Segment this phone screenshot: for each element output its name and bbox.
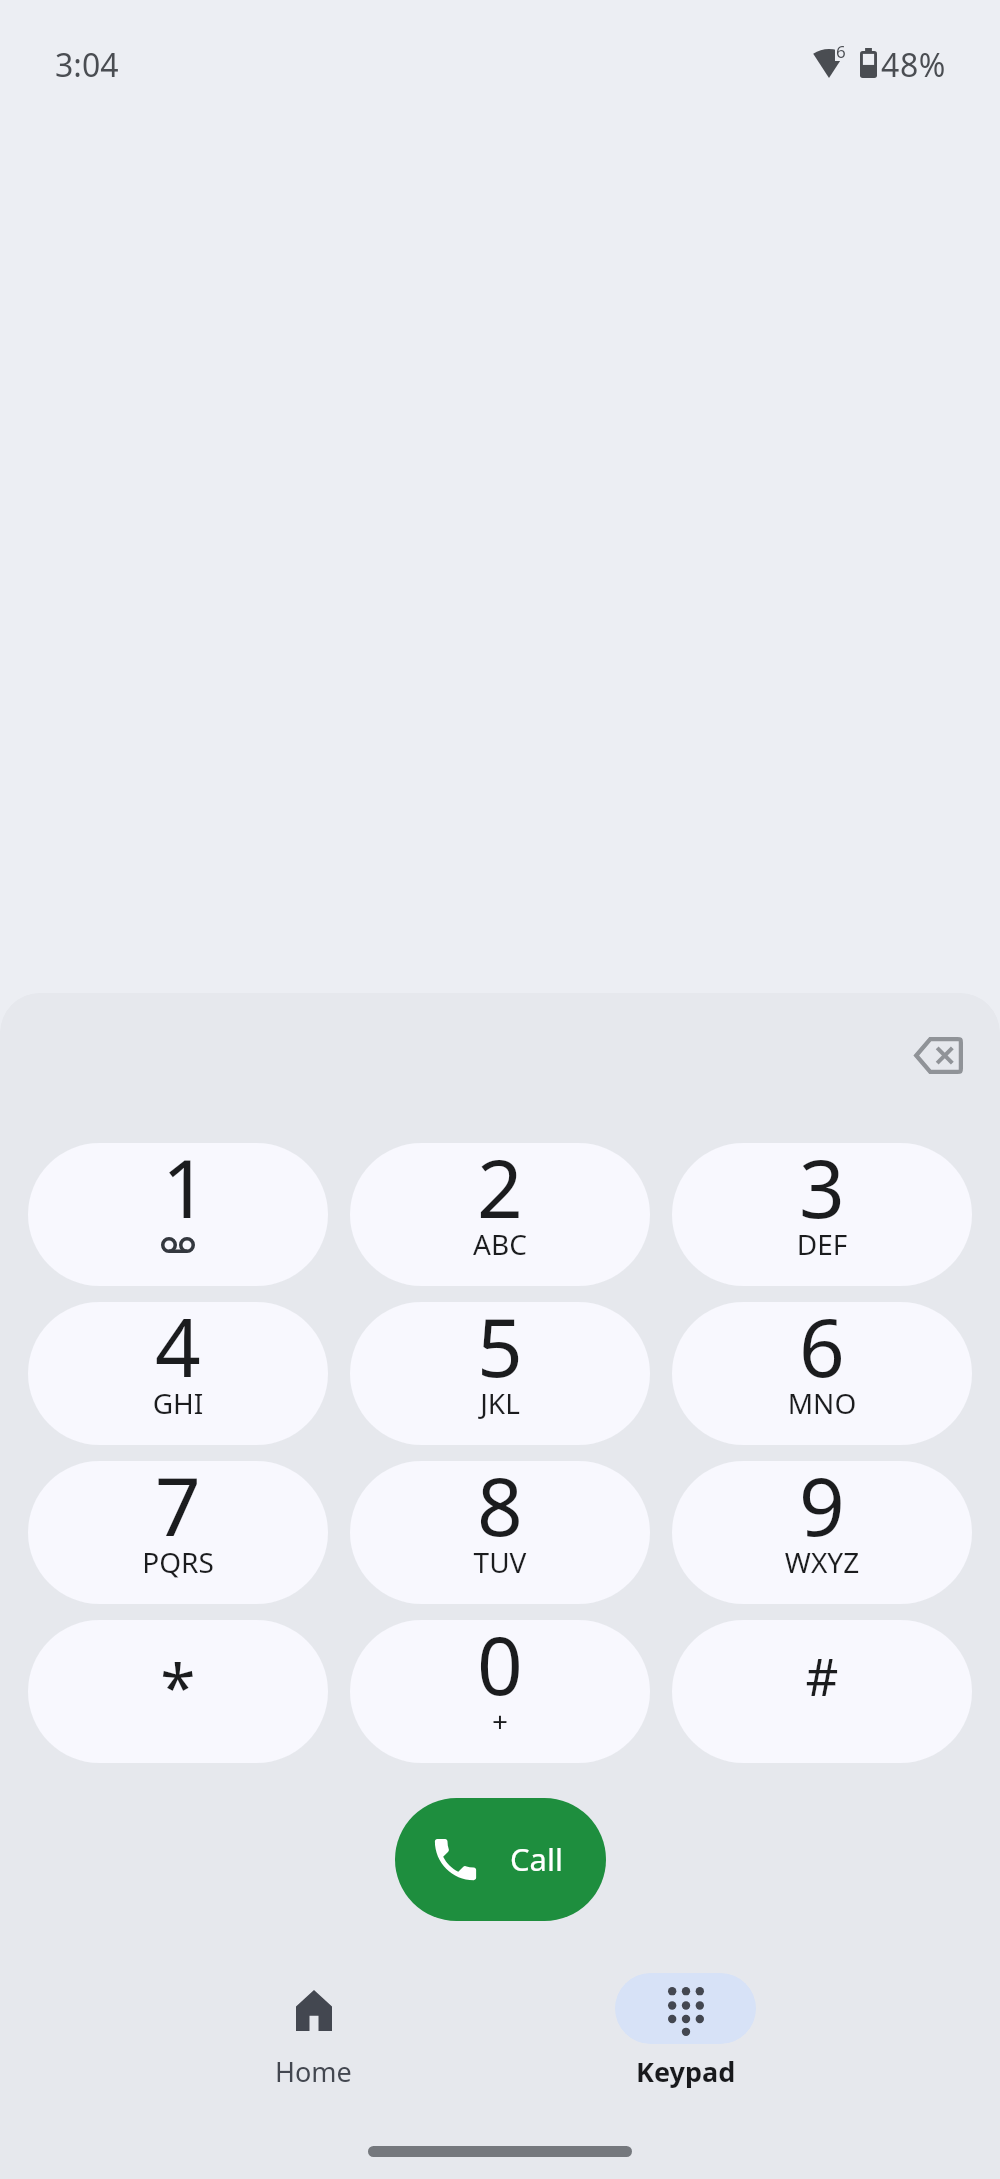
staticText: +	[350, 1702, 650, 1740]
button[interactable]: 1	[28, 1143, 328, 1286]
staticText: 2	[350, 1143, 650, 1241]
staticText: TUV	[350, 1543, 650, 1581]
staticText: 0	[350, 1620, 650, 1718]
button[interactable]: Home	[243, 1973, 384, 2090]
button[interactable]: Keypad	[615, 1973, 756, 2090]
button[interactable]: Delete	[888, 1005, 988, 1105]
staticText: WXYZ	[672, 1543, 972, 1581]
staticText: 3	[672, 1143, 972, 1241]
button[interactable]: 9	[672, 1461, 972, 1604]
staticText: *	[28, 1643, 328, 1730]
staticText: Home	[275, 2053, 352, 2090]
staticText: 9	[672, 1461, 972, 1559]
button[interactable]: Call	[395, 1798, 606, 1921]
staticText: 4	[28, 1302, 328, 1400]
staticText: 7	[28, 1461, 328, 1559]
staticText: 8	[350, 1461, 650, 1559]
button[interactable]: 7	[28, 1461, 328, 1604]
staticText: DEF	[672, 1225, 972, 1263]
staticText: 5	[350, 1302, 650, 1400]
button[interactable]: 3	[672, 1143, 972, 1286]
staticText: PQRS	[28, 1543, 328, 1581]
staticText: JKL	[350, 1384, 650, 1422]
button[interactable]: 4	[28, 1302, 328, 1445]
staticText: 6	[672, 1302, 972, 1400]
staticText: 48%	[881, 43, 947, 87]
staticText: GHI	[28, 1384, 328, 1422]
button[interactable]: 5	[350, 1302, 650, 1445]
staticText: Keypad	[636, 2053, 736, 2090]
staticText: 3:04	[55, 43, 119, 87]
staticText: 1	[35, 1143, 328, 1241]
staticText: Call	[510, 1838, 563, 1880]
button[interactable]: 6	[672, 1302, 972, 1445]
button[interactable]: #	[672, 1620, 972, 1763]
staticText: MNO	[672, 1384, 972, 1422]
button[interactable]: *	[28, 1620, 328, 1763]
staticText: ABC	[350, 1225, 650, 1263]
staticText: 6	[836, 40, 846, 63]
staticText: #	[672, 1641, 972, 1710]
button[interactable]: 8	[350, 1461, 650, 1604]
button[interactable]: 2	[350, 1143, 650, 1286]
button[interactable]: 0	[350, 1620, 650, 1763]
